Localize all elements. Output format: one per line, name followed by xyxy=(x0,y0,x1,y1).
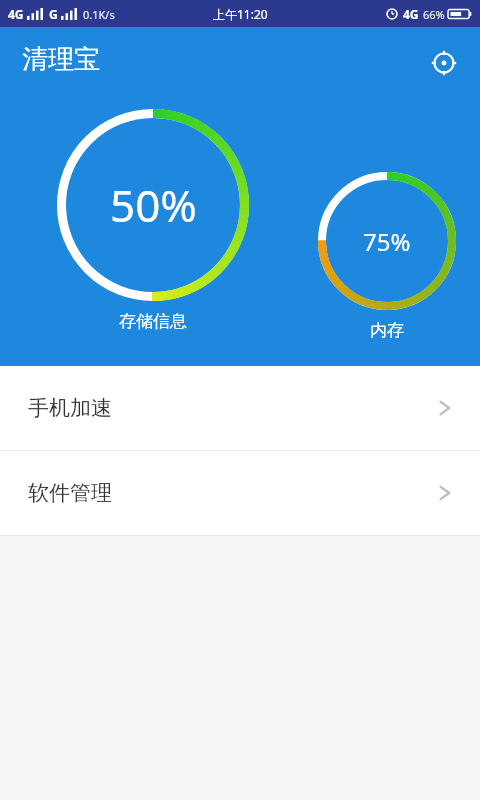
button[interactable]: 手机加速 xyxy=(0,366,480,450)
staticText: 75% xyxy=(363,225,411,258)
staticText: 上午11:20 xyxy=(213,6,268,22)
staticText: G xyxy=(49,6,58,22)
staticText: 0.1K/s xyxy=(83,7,115,22)
staticText: 66% xyxy=(423,7,445,22)
staticText: 存储信息 xyxy=(119,311,187,332)
staticText: 50% xyxy=(110,175,197,235)
staticText: 4G xyxy=(8,6,24,22)
button[interactable]: Settings xyxy=(422,41,466,85)
staticText: 软件管理 xyxy=(28,480,112,506)
button[interactable]: 软件管理 xyxy=(0,451,480,535)
staticText: 手机加速 xyxy=(28,395,112,421)
staticText: 4G xyxy=(403,6,419,22)
staticText: 内存 xyxy=(370,320,404,341)
staticText: 清理宝 xyxy=(22,43,100,76)
